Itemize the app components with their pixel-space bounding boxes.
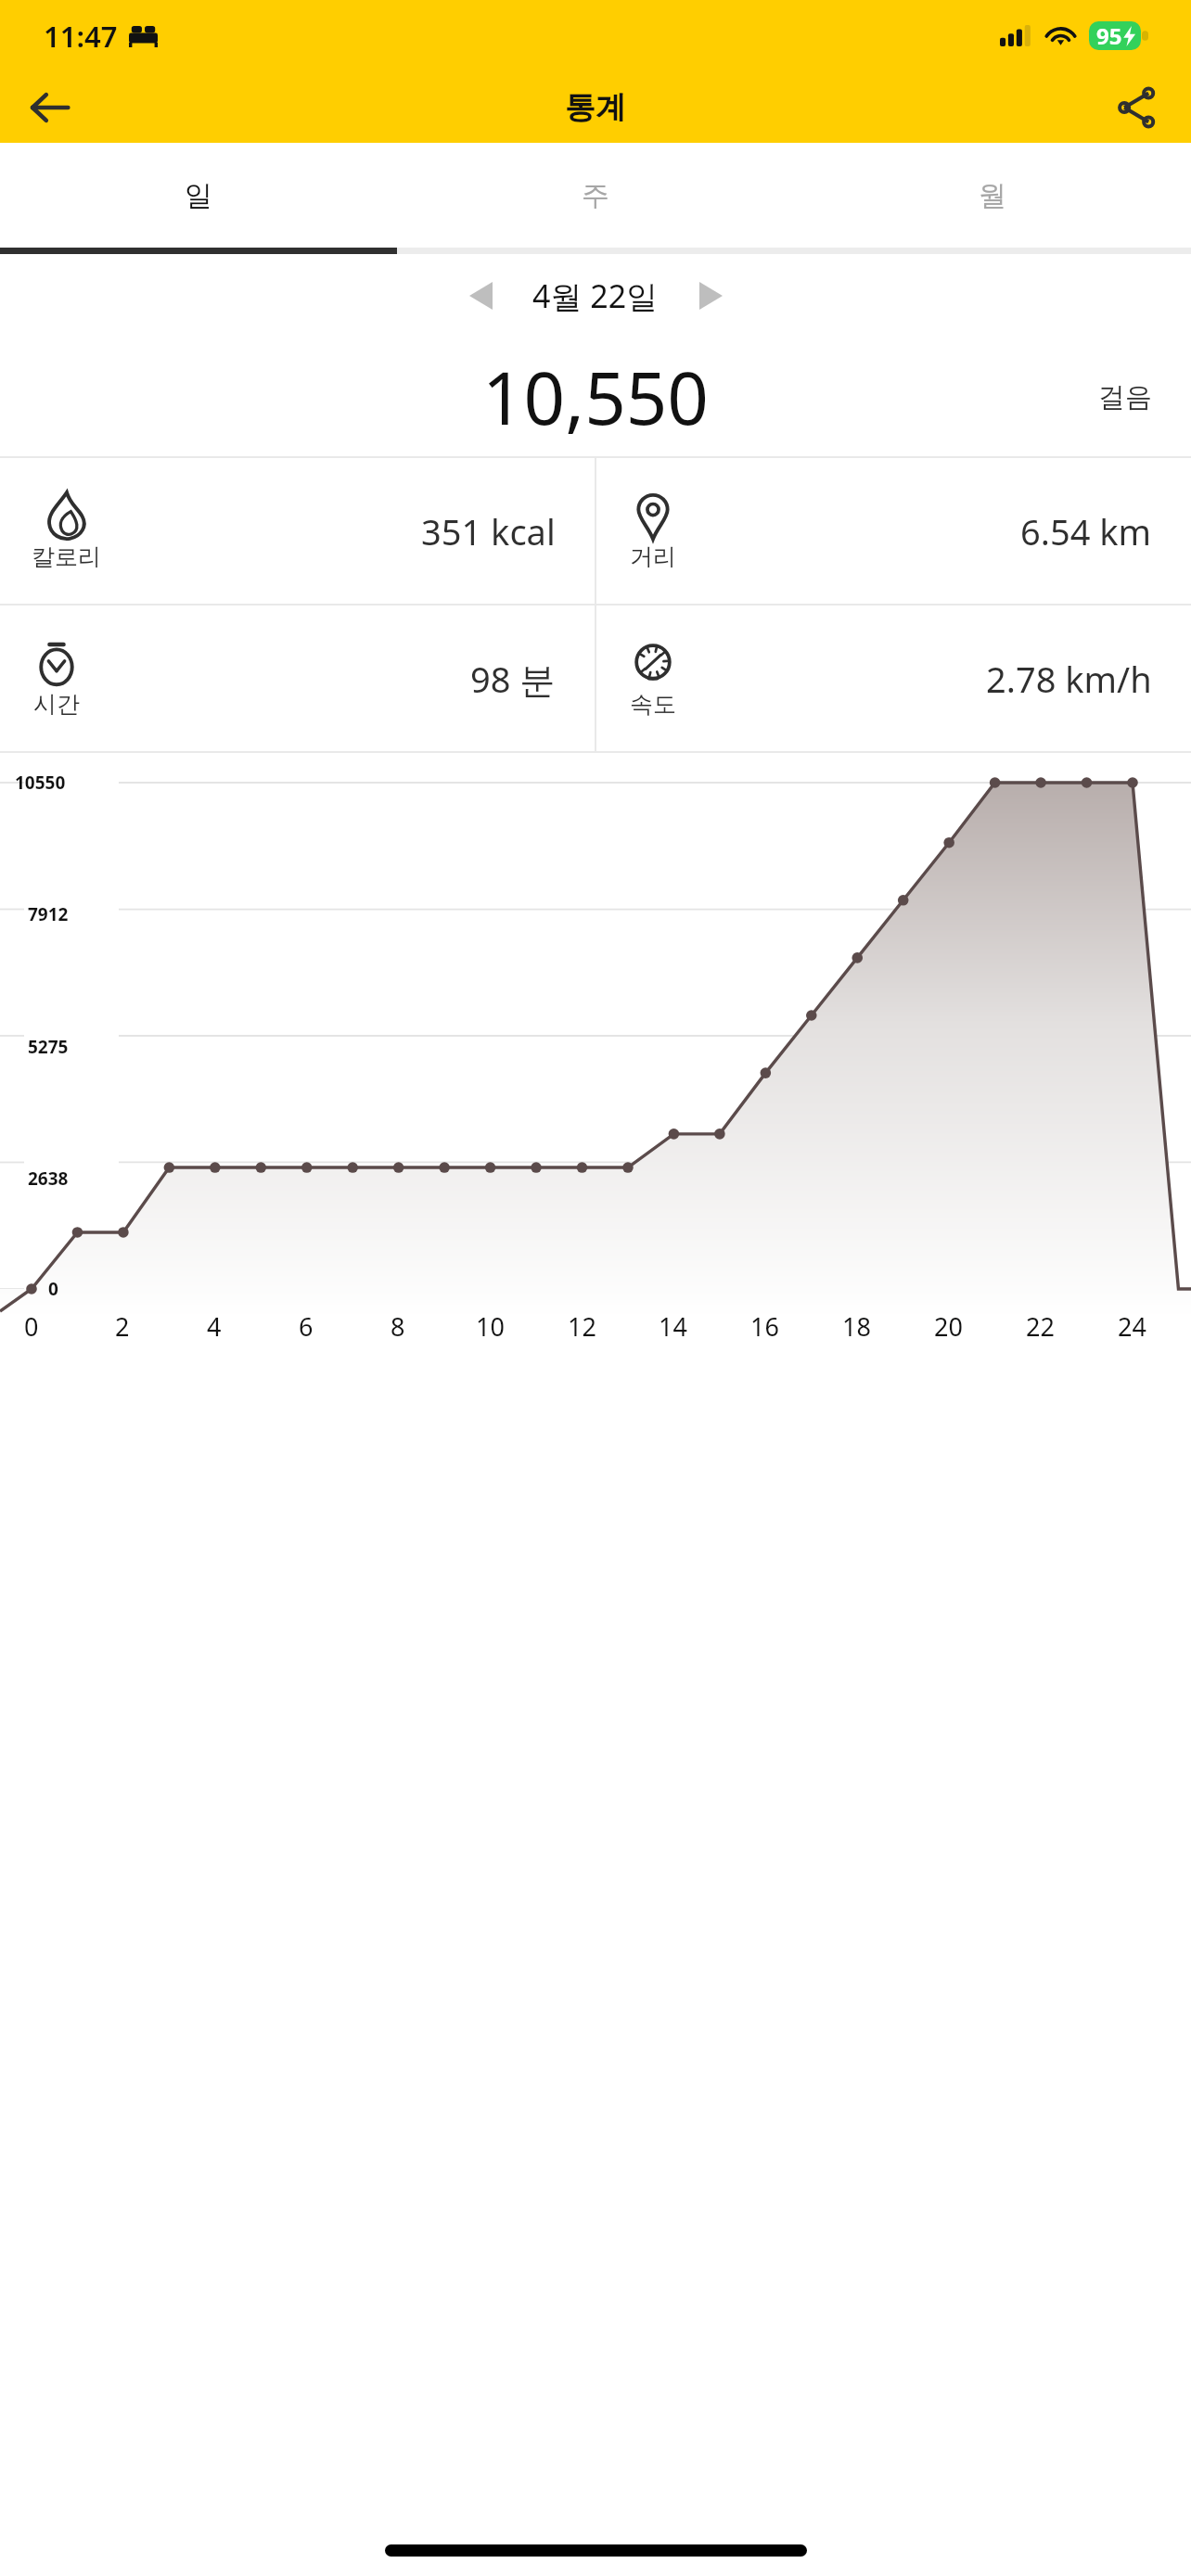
staticText: 98 분 — [470, 655, 556, 703]
staticText: 24 — [1118, 1309, 1146, 1344]
staticText: 20 — [934, 1309, 963, 1344]
staticText: 8 — [391, 1309, 405, 1344]
button[interactable]: 일 — [0, 143, 397, 248]
button[interactable]: 주 — [397, 143, 794, 248]
button[interactable]: Share — [1102, 72, 1172, 143]
staticText: 10 — [476, 1309, 505, 1344]
staticText: 걸음 — [1098, 380, 1152, 414]
staticText: 2 — [115, 1309, 130, 1344]
button[interactable]: 속도 — [596, 606, 1191, 751]
staticText: 일 — [185, 178, 212, 213]
staticText: 7912 — [28, 902, 69, 926]
staticText: 4월 22일 — [532, 274, 659, 317]
staticText: 14 — [659, 1309, 687, 1344]
staticText: 10,550 — [482, 348, 709, 446]
staticText: 시간 — [33, 690, 80, 719]
button[interactable]: 시간 — [0, 606, 595, 751]
staticText: 18 — [842, 1309, 871, 1344]
staticText: 주 — [582, 178, 609, 213]
staticText: 351 kcal — [421, 507, 556, 555]
staticText: 월 — [979, 178, 1006, 213]
button[interactable]: 월 — [794, 143, 1191, 248]
button[interactable]: 거리 — [596, 458, 1191, 604]
staticText: 11:47 — [44, 17, 118, 56]
staticText: 4 — [207, 1309, 222, 1344]
staticText: 5275 — [28, 1035, 69, 1059]
staticText: 칼로리 — [32, 542, 101, 571]
staticText: 0 — [24, 1309, 39, 1344]
staticText: 10550 — [15, 771, 66, 795]
staticText: 6 — [299, 1309, 314, 1344]
staticText: 95 — [1096, 20, 1122, 51]
staticText: 2638 — [28, 1167, 69, 1191]
button[interactable]: Back — [15, 72, 85, 143]
staticText: 6.54 km — [1020, 507, 1152, 555]
button[interactable]: 칼로리 — [0, 458, 595, 604]
staticText: 12 — [568, 1309, 596, 1344]
staticText: 2.78 km/h — [986, 655, 1152, 703]
staticText: 거리 — [630, 542, 676, 571]
staticText: 16 — [750, 1309, 779, 1344]
staticText: 22 — [1026, 1309, 1055, 1344]
staticText: 속도 — [630, 690, 676, 719]
staticText: 통계 — [565, 88, 626, 127]
staticText: 0 — [48, 1277, 58, 1301]
button[interactable]: Previous day — [451, 266, 510, 325]
button[interactable]: Next day — [681, 266, 740, 325]
